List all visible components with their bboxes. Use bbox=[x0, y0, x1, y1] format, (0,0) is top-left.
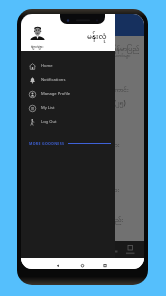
button[interactable]: My List bbox=[21, 101, 115, 115]
staticText: များများ bbox=[31, 44, 44, 50]
staticText: Home bbox=[41, 63, 53, 69]
staticText: များ bbox=[110, 140, 120, 150]
staticText: စား bbox=[111, 185, 120, 195]
staticText: ကောင်း bbox=[111, 86, 129, 95]
staticText: မန်းလုံ bbox=[87, 29, 107, 45]
button[interactable]: Notifications bbox=[21, 73, 115, 87]
button[interactable]: Log Out bbox=[21, 115, 115, 129]
staticText: သတင်းများ bbox=[113, 53, 131, 59]
staticText: ပည်း bbox=[111, 215, 124, 225]
button[interactable]: Manage Profile bbox=[21, 87, 115, 101]
button[interactable]: Home bbox=[21, 59, 115, 73]
staticText: Notifications bbox=[41, 77, 66, 83]
staticText: MORE GOODNESS bbox=[29, 141, 65, 146]
staticText: Log Out bbox=[41, 119, 57, 125]
staticText: Manage Profile bbox=[41, 91, 71, 97]
staticText: (၂၅) bbox=[114, 98, 126, 109]
staticText: My List bbox=[41, 105, 55, 111]
staticText: မြန်မာပြည် bbox=[111, 44, 140, 55]
